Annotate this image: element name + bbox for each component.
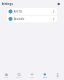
staticText: Search [16,77,22,78]
button[interactable]: Edit [57,3,60,5]
button[interactable]: Search [13,73,26,78]
staticText: Settings [1,2,12,6]
button[interactable]: New [26,73,38,78]
button[interactable]: Alerts [7,8,57,15]
button[interactable]: Alerts [38,73,51,78]
button[interactable]: Sounds [7,15,57,22]
staticText: Alerts [14,10,22,13]
staticText: Alerts [43,77,47,78]
staticText: Home [4,77,8,78]
staticText: New [30,77,33,78]
button[interactable]: Home [0,73,13,78]
staticText: Me [57,77,59,78]
button[interactable]: Me [51,73,64,78]
staticText: Sounds [14,17,24,21]
